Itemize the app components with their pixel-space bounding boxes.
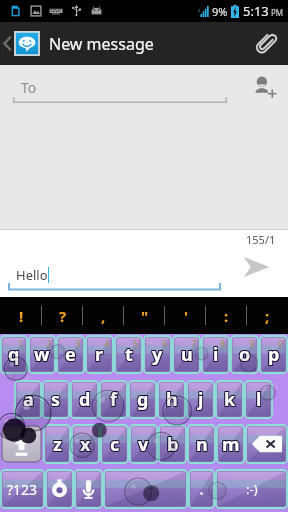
button[interactable]: Hello [8,261,221,291]
staticText: 5:13 [243,2,269,20]
button[interactable]: 6 [144,336,171,373]
staticText: q [7,342,19,367]
button[interactable]: Add recipient [244,67,286,108]
staticText: l [257,387,263,412]
staticText: a [22,386,33,411]
staticText: y [152,343,163,368]
button[interactable]: 4 [86,336,113,373]
button[interactable]: Shift [2,426,41,462]
staticText: s [52,387,62,412]
staticText: f [111,387,118,412]
button[interactable]: 1 [1,336,27,373]
staticText: n [195,431,207,456]
button[interactable]: ' [165,297,206,334]
button[interactable]: n [188,425,215,463]
staticText: l [256,387,262,412]
staticText: x [79,432,90,457]
button[interactable]: v [130,425,157,463]
button[interactable]: Voice input [75,470,102,508]
staticText: v [139,431,150,456]
button[interactable]: x [72,425,99,463]
button[interactable]: 2 [29,336,55,373]
staticText: y [152,342,163,367]
button[interactable]: Period [189,470,214,508]
button[interactable]: New message [0,22,154,65]
staticText: o [238,341,250,366]
button[interactable]: Send [234,245,278,289]
staticText: s [52,386,62,411]
staticText: k [223,387,235,412]
button[interactable]: z [44,425,70,463]
button[interactable]: k [216,381,243,418]
staticText: f [109,386,116,411]
button[interactable] [104,470,187,508]
staticText: g [136,386,148,411]
staticText: b [166,433,178,458]
button[interactable]: 0 [260,336,287,373]
staticText: r [96,341,105,366]
staticText: j [199,388,205,413]
button[interactable]: ?123 [1,470,44,508]
staticText: x [81,433,92,458]
staticText: b [168,431,180,456]
button[interactable]: h [158,381,185,418]
staticText: x [81,432,92,457]
button[interactable]: 8 [202,336,229,373]
staticText: d [78,387,90,412]
staticText: t [124,341,132,366]
button[interactable]: ; [247,297,288,334]
staticText: 7 [191,337,197,349]
staticText: e [64,342,75,367]
button[interactable]: , [83,297,124,334]
staticText: u [181,342,193,367]
staticText: e [66,343,77,368]
staticText: z [53,432,62,457]
button[interactable]: 9 [231,336,258,373]
staticText: s [50,386,60,411]
staticText: l [257,388,263,413]
button[interactable]: :-) [216,470,287,508]
button[interactable]: Attach [244,22,288,65]
staticText: x [80,433,91,458]
staticText: y [153,341,164,366]
staticText: r [96,343,105,368]
staticText: z [53,431,62,456]
staticText: a [22,388,33,413]
button[interactable]: : [206,297,247,334]
staticText: l [256,388,262,413]
button[interactable]: Delete [246,425,287,463]
staticText: w [34,341,50,366]
staticText: q [7,341,19,366]
button[interactable]: j [187,381,214,418]
button[interactable]: d [71,381,98,418]
staticText: p [268,341,280,366]
button[interactable]: l [245,381,272,418]
staticText: j [197,387,203,412]
button[interactable]: m [217,425,244,463]
button[interactable]: f [100,381,127,418]
button[interactable]: " [124,297,165,334]
button[interactable]: ? [42,297,83,334]
staticText: x [81,431,92,456]
button[interactable]: c [101,425,128,463]
staticText: e [64,343,75,368]
staticText: e [65,343,76,368]
button[interactable]: b [159,425,186,463]
staticText: h [166,387,178,412]
staticText: c [109,432,119,457]
button[interactable]: Settings [46,470,73,508]
button[interactable]: 5 [115,336,142,373]
staticText: y [152,341,163,366]
button[interactable]: s [43,381,69,418]
staticText: : [224,306,229,326]
button[interactable]: To [13,75,227,103]
button[interactable]: 3 [57,336,84,373]
staticText: m [223,433,241,458]
button[interactable]: ! [0,297,42,334]
staticText: o [238,342,250,367]
button[interactable]: a [15,381,41,418]
button[interactable]: 7 [173,336,200,373]
button[interactable]: g [129,381,156,418]
staticText: v [138,432,149,457]
staticText: u [180,342,192,367]
